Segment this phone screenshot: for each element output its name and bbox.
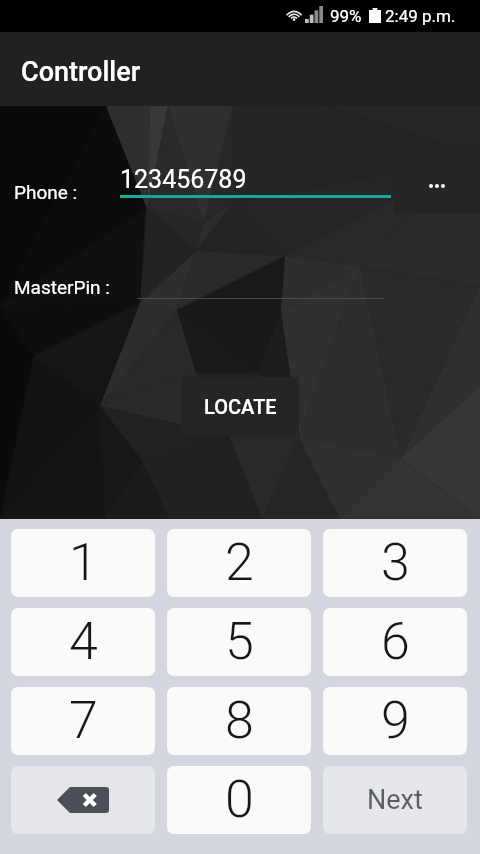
staticText: 4 [69,611,98,672]
staticText: 8 [225,690,254,751]
staticText: MasterPin : [14,276,110,298]
button[interactable]: 0 [167,766,311,834]
staticText: 7 [69,690,98,751]
staticText: 99% [330,6,362,26]
button[interactable]: 6 [323,608,467,676]
staticText: Phone : [14,181,78,203]
button[interactable]: 2 [167,529,311,597]
staticText: 2 [225,532,254,593]
staticText: 2:49 p.m. [385,6,456,26]
button[interactable]: 1 [11,529,155,597]
staticText: 123456789 [120,165,247,194]
button[interactable]: LOCATE [181,377,299,435]
staticText: 0 [225,769,254,830]
staticText: 9 [381,690,410,751]
button[interactable]: 5 [167,608,311,676]
button[interactable]: 3 [323,529,467,597]
staticText: Controller [21,56,141,88]
button[interactable]: 9 [323,687,467,755]
button[interactable]: Backspace [11,766,155,834]
staticText: LOCATE [204,395,277,418]
button[interactable]: Next [323,766,467,834]
staticText: 6 [381,611,410,672]
button[interactable]: 8 [167,687,311,755]
button[interactable]: 7 [11,687,155,755]
staticText: 3 [381,532,410,593]
staticText: Next [367,784,423,816]
staticText: 5 [225,611,254,672]
button[interactable]: MasterPin : [14,276,110,298]
staticText: 1 [69,532,98,593]
button[interactable]: More options [394,147,480,213]
button[interactable]: 4 [11,608,155,676]
button[interactable]: Phone : [14,181,78,203]
